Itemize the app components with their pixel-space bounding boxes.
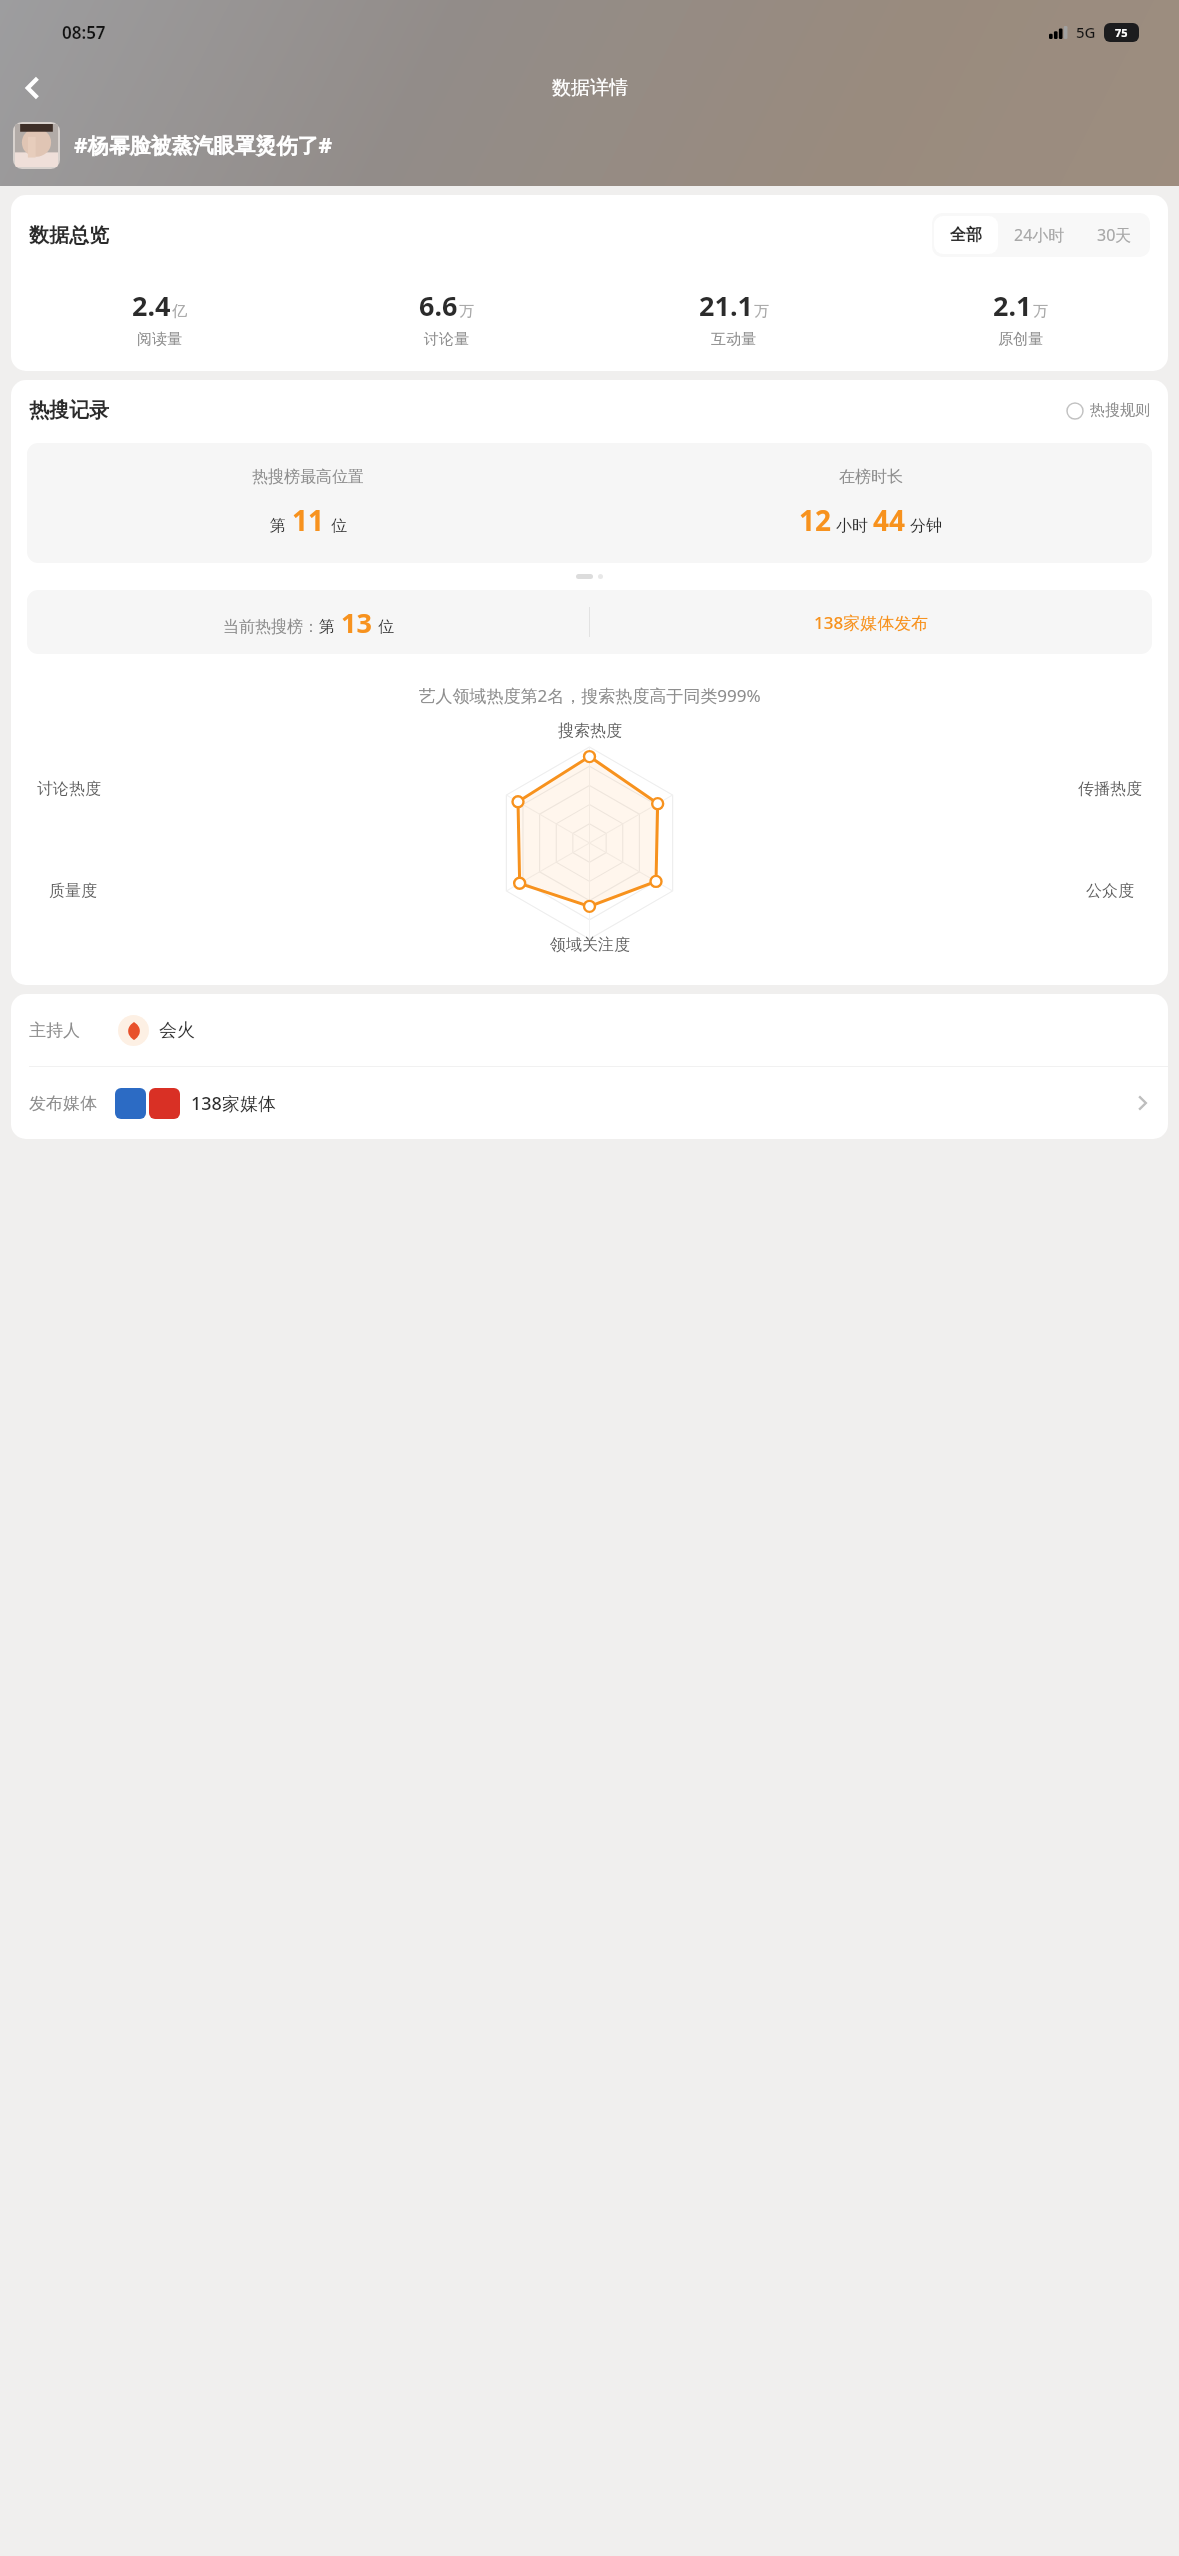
staticText: 44 bbox=[873, 501, 906, 539]
staticText: 在榜时长 bbox=[839, 467, 903, 487]
staticText: 热搜规则 bbox=[1090, 401, 1150, 420]
button[interactable]: 热搜规则 bbox=[1066, 401, 1150, 420]
staticText: 分钟 bbox=[910, 516, 942, 536]
staticText: 21.1 bbox=[699, 287, 753, 324]
staticText: 6.6 bbox=[419, 287, 458, 324]
staticText: 互动量 bbox=[711, 330, 756, 349]
button[interactable]: 主持人 bbox=[11, 994, 1168, 1066]
staticText: 12 bbox=[799, 501, 832, 539]
staticText: 138家媒体 bbox=[191, 1091, 276, 1116]
staticText: 2.1 bbox=[993, 287, 1032, 324]
staticText: 75 bbox=[1115, 25, 1128, 40]
staticText: 搜索热度 bbox=[558, 721, 622, 741]
button[interactable]: 发布媒体 bbox=[11, 1067, 1168, 1139]
staticText: 位 bbox=[331, 516, 347, 536]
staticText: 领域关注度 bbox=[550, 935, 630, 955]
button[interactable]: Back bbox=[8, 63, 58, 113]
staticText: 30天 bbox=[1097, 224, 1132, 246]
staticText: 主持人 bbox=[29, 1020, 80, 1041]
staticText: 讨论热度 bbox=[37, 779, 101, 799]
staticText: 公众度 bbox=[1086, 881, 1134, 901]
staticText: 小时 bbox=[836, 516, 868, 536]
staticText: 当前热搜榜： bbox=[223, 617, 319, 637]
other: More bbox=[1134, 1095, 1150, 1111]
staticText: 阅读量 bbox=[137, 330, 182, 349]
staticText: 讨论量 bbox=[424, 330, 469, 349]
staticText: 第 bbox=[319, 617, 335, 637]
staticText: 热搜榜最高位置 bbox=[252, 467, 364, 487]
staticText: 万 bbox=[754, 302, 769, 321]
staticText: 热搜记录 bbox=[29, 398, 109, 423]
staticText: 亿 bbox=[172, 302, 187, 321]
staticText: 数据总览 bbox=[29, 223, 109, 248]
staticText: 2.4 bbox=[132, 287, 171, 324]
staticText: #杨幂脸被蒸汽眼罩烫伤了# bbox=[74, 131, 333, 160]
staticText: 全部 bbox=[950, 225, 982, 245]
staticText: 13 bbox=[341, 604, 372, 641]
staticText: 传播热度 bbox=[1078, 779, 1142, 799]
button[interactable]: Topic avatar bbox=[13, 122, 60, 169]
staticText: 5G bbox=[1076, 22, 1096, 42]
button[interactable]: 当前热搜榜： bbox=[27, 590, 1152, 654]
staticText: 艺人领域热度第2名，搜索热度高于同类999% bbox=[418, 684, 761, 707]
staticText: 质量度 bbox=[49, 881, 97, 901]
staticText: 138家媒体发布 bbox=[814, 611, 929, 634]
staticText: 11 bbox=[292, 501, 325, 539]
staticText: 数据详情 bbox=[552, 76, 628, 100]
staticText: 24小时 bbox=[1014, 224, 1065, 246]
staticText: 发布媒体 bbox=[29, 1093, 97, 1114]
staticText: 位 bbox=[378, 617, 394, 637]
staticText: 会火 bbox=[159, 1019, 195, 1042]
staticText: 万 bbox=[459, 302, 474, 321]
button[interactable]: 24小时 bbox=[998, 215, 1081, 255]
button[interactable]: 30天 bbox=[1081, 215, 1148, 255]
staticText: 08:57 bbox=[62, 21, 106, 44]
staticText: 原创量 bbox=[998, 330, 1043, 349]
staticText: 第 bbox=[270, 516, 286, 536]
staticText: 万 bbox=[1033, 302, 1048, 321]
button[interactable]: 全部 bbox=[934, 216, 998, 254]
